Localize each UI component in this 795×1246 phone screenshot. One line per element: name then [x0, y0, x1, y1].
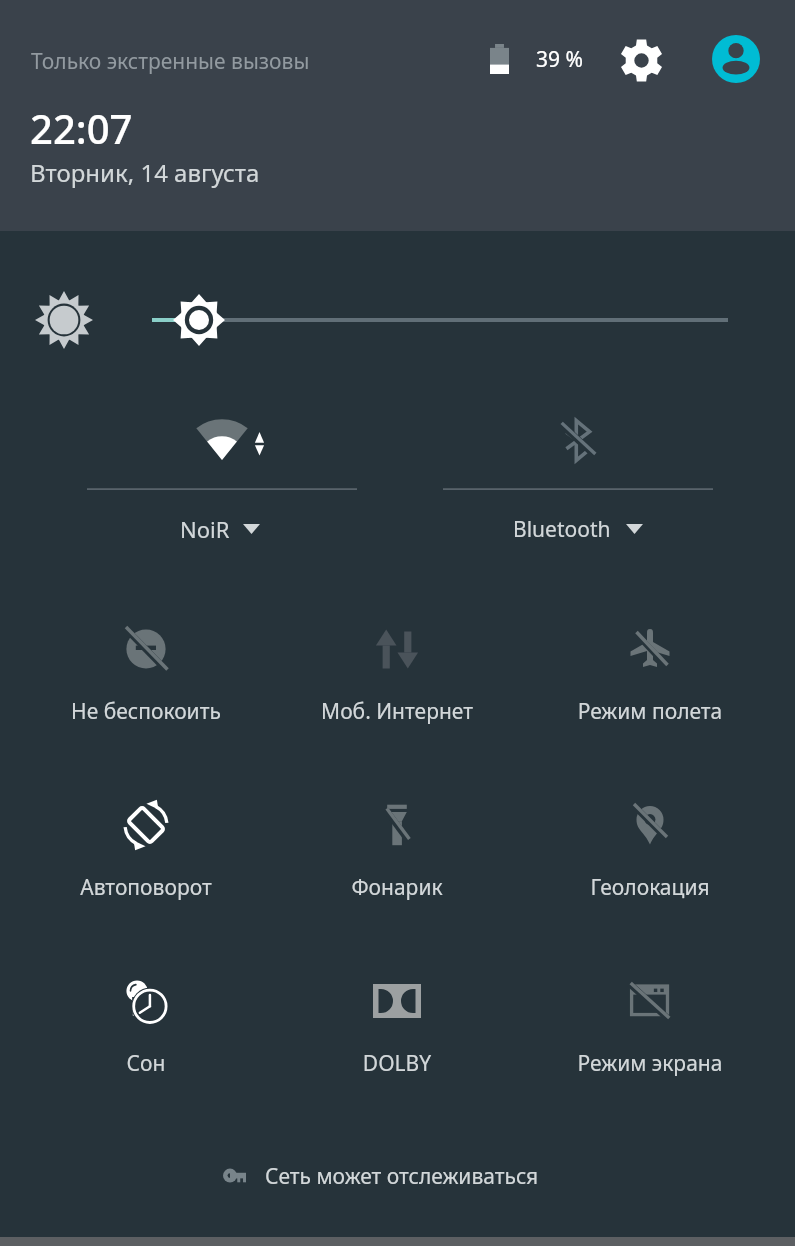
- button[interactable]: Сон: [26, 936, 266, 1076]
- staticText: Сон: [26, 1049, 266, 1078]
- button[interactable]: User profile: [712, 35, 760, 83]
- button[interactable]: Режим полета: [530, 584, 770, 724]
- staticText: Автоповорот: [26, 873, 266, 902]
- button[interactable]: Геолокация: [530, 760, 770, 900]
- staticText: 39 %: [536, 45, 583, 74]
- staticText: Bluetooth: [513, 515, 611, 544]
- button[interactable]: Моб. Интернет: [277, 584, 517, 724]
- button[interactable]: Auto brightness: [35, 291, 93, 349]
- staticText: Сеть может отслеживаться: [265, 1162, 539, 1191]
- button[interactable]: Автоповорот: [26, 760, 266, 900]
- staticText: Режим полета: [530, 697, 770, 726]
- staticText: Режим экрана: [530, 1049, 770, 1078]
- staticText: Геолокация: [530, 873, 770, 902]
- staticText: 22:07: [30, 101, 133, 155]
- staticText: Только экстренные вызовы: [31, 47, 310, 76]
- staticText: Моб. Интернет: [277, 697, 517, 726]
- button[interactable]: Сеть может отслеживаться: [195, 1150, 605, 1202]
- button[interactable]: Settings: [615, 34, 667, 86]
- button[interactable]: Bluetooth: [420, 398, 780, 558]
- button[interactable]: NoiR: [10, 398, 410, 558]
- staticText: Не беспокоить: [26, 697, 266, 726]
- button[interactable]: Режим экрана: [530, 936, 770, 1076]
- staticText: Вторник, 14 августа: [30, 156, 260, 189]
- button[interactable]: Не беспокоить: [26, 584, 266, 724]
- staticText: DOLBY: [277, 1049, 517, 1078]
- staticText: NoiR: [180, 514, 230, 544]
- button[interactable]: DOLBY: [277, 936, 517, 1076]
- button[interactable]: Brightness level: [173, 294, 225, 346]
- button[interactable]: Фонарик: [277, 760, 517, 900]
- staticText: Фонарик: [277, 873, 517, 902]
